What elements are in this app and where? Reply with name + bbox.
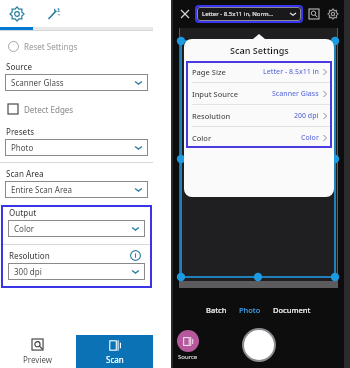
button[interactable]: Enhancements tab bbox=[34, 0, 72, 27]
button[interactable]: Photo bbox=[5, 139, 148, 156]
button[interactable]: Photo bbox=[237, 304, 263, 316]
staticText: Color bbox=[192, 133, 212, 143]
button[interactable]: Source bbox=[177, 330, 199, 361]
staticText: 200 dpi bbox=[294, 111, 319, 121]
staticText: Detect Edges bbox=[24, 104, 74, 115]
staticText: Output bbox=[9, 207, 37, 218]
staticText: Color bbox=[14, 223, 35, 234]
staticText: 300 dpi bbox=[14, 266, 42, 277]
staticText: Reset Settings bbox=[24, 41, 78, 52]
staticText: Photo bbox=[239, 305, 261, 315]
staticText: Scan Area bbox=[6, 168, 44, 179]
staticText: Document bbox=[273, 305, 311, 315]
staticText: Color bbox=[301, 133, 319, 143]
staticText: Source bbox=[178, 353, 198, 361]
button[interactable]: Batch bbox=[204, 304, 229, 316]
staticText: Photo bbox=[11, 142, 34, 153]
staticText: Source bbox=[6, 61, 33, 72]
staticText: Presets bbox=[6, 126, 35, 137]
button[interactable]: Entire Scan Area bbox=[5, 181, 148, 198]
button[interactable]: Scanner Glass bbox=[5, 74, 148, 91]
button[interactable]: Scan bbox=[76, 335, 153, 368]
button[interactable]: Preview bbox=[0, 335, 76, 368]
staticText: Scanner Glass bbox=[272, 89, 319, 99]
button[interactable]: Color bbox=[8, 220, 145, 237]
button[interactable]: Reset Settings bbox=[8, 37, 153, 55]
staticText: Scan bbox=[106, 354, 124, 365]
button[interactable]: Input Source bbox=[186, 83, 332, 105]
button[interactable]: 300 dpi bbox=[8, 263, 145, 280]
button[interactable]: Resolution bbox=[186, 105, 332, 127]
button[interactable]: Crop bbox=[307, 7, 321, 21]
staticText: Preview bbox=[23, 354, 53, 365]
button[interactable]: Page Size bbox=[186, 61, 332, 83]
button[interactable]: Settings tab bbox=[0, 0, 34, 27]
staticText: Batch bbox=[206, 305, 227, 315]
button[interactable]: Capture bbox=[244, 330, 274, 360]
staticText: Resolution bbox=[192, 111, 231, 121]
staticText: Entire Scan Area bbox=[11, 184, 73, 195]
staticText: Page Size bbox=[192, 67, 226, 77]
button[interactable]: Resolution info bbox=[129, 249, 141, 261]
button[interactable]: Color bbox=[186, 127, 332, 148]
staticText: Resolution bbox=[9, 250, 50, 261]
button[interactable]: Settings bbox=[326, 7, 340, 21]
button[interactable]: Close bbox=[177, 6, 193, 22]
staticText: Letter - 8.5x11 in bbox=[263, 67, 319, 77]
button[interactable]: Detect Edges bbox=[8, 100, 153, 118]
staticText: Scanner Glass bbox=[11, 77, 64, 88]
staticText: Scan Settings bbox=[230, 44, 289, 56]
button[interactable]: Letter - 8.5x11 in, Norm... bbox=[197, 7, 301, 21]
staticText: Letter - 8.5x11 in, Norm... bbox=[202, 10, 274, 18]
button[interactable]: Document bbox=[271, 304, 313, 316]
staticText: Input Source bbox=[192, 89, 238, 99]
